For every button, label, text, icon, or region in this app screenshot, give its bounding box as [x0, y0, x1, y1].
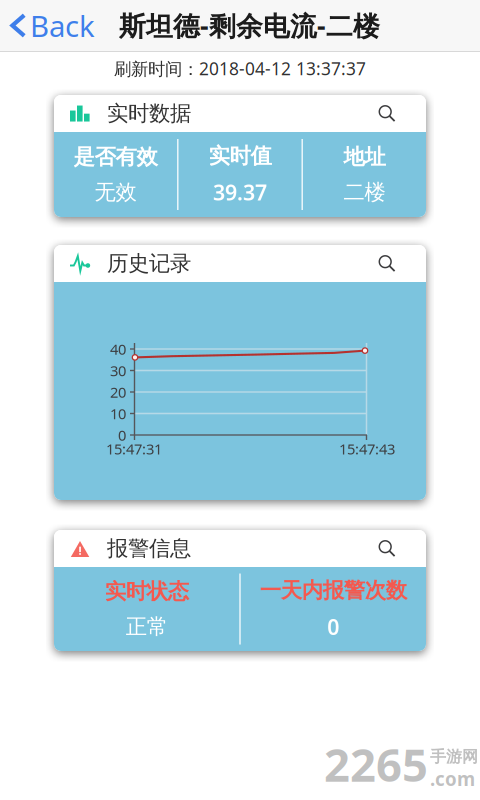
staticText: 40: [110, 339, 126, 359]
staticText: 报警信息: [107, 535, 191, 562]
staticText: 正常: [126, 613, 168, 640]
button[interactable]: Back: [0, 0, 101, 50]
staticText: 一天内报警次数: [260, 577, 407, 603]
button[interactable]: Search: [368, 530, 406, 566]
staticText: 历史记录: [107, 250, 191, 277]
staticText: 2265: [324, 734, 428, 794]
staticText: 地址: [343, 144, 385, 170]
staticText: 30: [110, 361, 126, 380]
staticText: .com: [430, 766, 475, 791]
staticText: 20: [110, 382, 126, 402]
staticText: 刷新时间：2018-04-12 13:37:37: [114, 57, 366, 80]
staticText: Back: [30, 6, 95, 45]
staticText: 无效: [95, 179, 137, 205]
staticText: 39.37: [213, 178, 267, 206]
staticText: 是否有效: [74, 144, 158, 170]
staticText: 实时状态: [105, 578, 189, 604]
staticText: 实时数据: [107, 100, 191, 127]
staticText: 10: [110, 404, 126, 423]
staticText: 实时值: [208, 143, 271, 169]
staticText: 斯坦德-剩余电流-二楼: [119, 8, 380, 43]
staticText: 0: [327, 612, 339, 641]
staticText: 15:47:31: [106, 439, 162, 458]
staticText: 0: [118, 425, 126, 445]
staticText: 手游网: [430, 747, 478, 766]
button[interactable]: Search: [368, 245, 406, 281]
button[interactable]: Search: [368, 95, 406, 131]
staticText: 15:47:43: [339, 439, 395, 458]
staticText: 二楼: [343, 179, 385, 205]
